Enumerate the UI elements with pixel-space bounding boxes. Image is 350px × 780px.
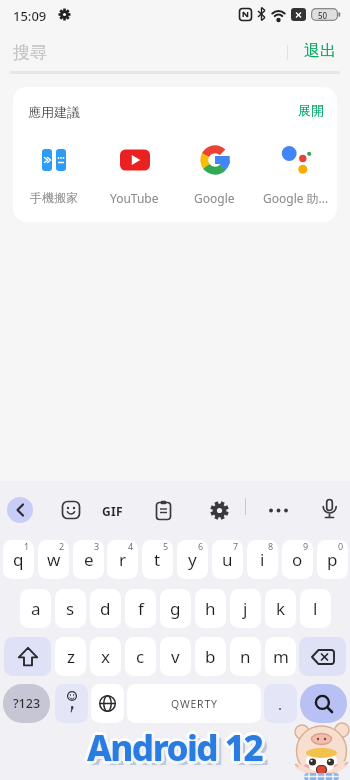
button[interactable]: c (125, 637, 156, 676)
staticText: 展開 (298, 102, 324, 118)
staticText: g (170, 597, 181, 620)
button[interactable]: u (212, 540, 243, 579)
button[interactable]: GIF (102, 503, 123, 519)
button[interactable]: s (55, 589, 86, 628)
staticText: h (205, 597, 216, 620)
staticText: a (31, 597, 41, 620)
staticText: r (119, 548, 127, 571)
staticText: u (222, 548, 233, 571)
staticText: Android 12 (87, 721, 263, 769)
staticText: Google (194, 190, 235, 206)
button[interactable] (300, 684, 347, 723)
button[interactable]: 展開 (293, 97, 329, 123)
staticText: 退出 (304, 41, 336, 61)
button[interactable] (4, 637, 51, 676)
button[interactable]: z (55, 637, 86, 676)
staticText: YouTube (110, 190, 159, 206)
button[interactable]: g (160, 589, 191, 628)
button[interactable] (91, 684, 124, 723)
button[interactable] (299, 637, 346, 676)
staticText: 1 (24, 540, 30, 552)
button[interactable] (7, 497, 33, 523)
button[interactable]: 手機搬家 (13, 130, 94, 222)
staticText: Android 12 (85, 722, 261, 770)
staticText: Android 12 (87, 727, 263, 775)
button[interactable]: a (20, 589, 51, 628)
staticText: Android 12 (87, 724, 263, 772)
staticText: x (101, 645, 110, 668)
button[interactable]: l (300, 589, 331, 628)
staticText: 0 (338, 540, 344, 552)
button[interactable]: v (160, 637, 191, 676)
button[interactable]: q (3, 540, 34, 579)
button[interactable]: n (230, 637, 261, 676)
staticText: Android 12 (90, 724, 266, 772)
staticText: QWERTY (171, 697, 218, 711)
button[interactable]: x (90, 637, 121, 676)
staticText: 6 (198, 540, 204, 552)
staticText: j (243, 597, 248, 620)
button[interactable]: d (90, 589, 121, 628)
staticText: Google 助... (263, 190, 329, 206)
button[interactable]: j (230, 589, 261, 628)
staticText: m (273, 645, 289, 668)
button[interactable]: 退出 (298, 38, 342, 64)
staticText: t (154, 548, 161, 571)
button[interactable] (320, 498, 339, 522)
button[interactable] (55, 684, 88, 723)
staticText: 2 (59, 540, 65, 552)
button[interactable]: . (264, 684, 297, 723)
button[interactable]: w (38, 540, 69, 579)
button[interactable]: t (142, 540, 173, 579)
staticText: Android 12 (89, 726, 265, 774)
button[interactable]: Google (174, 130, 255, 222)
button[interactable]: k (265, 589, 296, 628)
staticText: GIF (102, 503, 123, 519)
staticText: z (67, 645, 75, 668)
button[interactable]: e (73, 540, 104, 579)
staticText: 3 (94, 540, 100, 552)
staticText: 15:09 (13, 7, 47, 25)
staticText: w (47, 548, 61, 571)
button[interactable]: o (282, 540, 313, 579)
staticText: 搜尋 (13, 42, 47, 63)
staticText: ?123 (13, 695, 41, 712)
staticText: Android 12 (89, 722, 265, 770)
button[interactable]: b (195, 637, 226, 676)
staticText: c (136, 645, 145, 668)
button[interactable]: m (265, 637, 296, 676)
staticText: 8 (268, 540, 274, 552)
button[interactable]: QWERTY (127, 684, 261, 723)
button[interactable] (266, 500, 291, 521)
staticText: k (276, 597, 286, 620)
staticText: s (66, 597, 75, 620)
button[interactable]: ?123 (3, 684, 50, 723)
button[interactable]: r (107, 540, 138, 579)
staticText: 應用建議 (28, 104, 80, 120)
staticText: 手機搬家 (30, 190, 78, 205)
staticText: 4 (128, 540, 134, 552)
button[interactable]: p (317, 540, 348, 579)
staticText: y (188, 548, 197, 571)
button[interactable] (155, 500, 172, 521)
button[interactable]: Google 助... (255, 130, 336, 222)
button[interactable]: f (125, 589, 156, 628)
staticText: f (138, 597, 144, 620)
staticText: 50 (318, 10, 328, 21)
button[interactable]: i (247, 540, 278, 579)
staticText: 9 (303, 540, 309, 552)
button[interactable] (61, 500, 81, 520)
button[interactable]: h (195, 589, 226, 628)
button[interactable]: YouTube (94, 130, 175, 222)
staticText: . (278, 694, 283, 714)
staticText: b (205, 645, 216, 668)
button[interactable]: y (177, 540, 208, 579)
staticText: e (84, 548, 94, 571)
staticText: n (240, 645, 251, 668)
staticText: d (100, 597, 111, 620)
staticText: o (292, 548, 303, 571)
button[interactable] (209, 500, 230, 521)
staticText: 5 (163, 540, 169, 552)
staticText: l (313, 597, 318, 620)
staticText: Android 12 (84, 724, 260, 772)
